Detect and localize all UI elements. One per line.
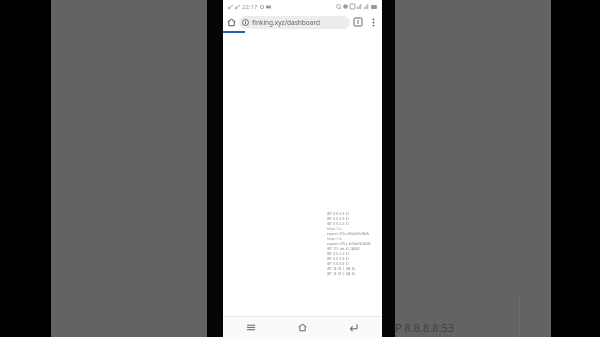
- staticText: https://s-edit.cloudflare.com: [327, 237, 372, 241]
- staticText: UDP 10.10.1.1@0.0j: [327, 267, 372, 271]
- staticText: request=c971a-3b53ebf4c30d2b: [327, 242, 372, 246]
- staticText: UDP 8.8.8.8:53: [327, 217, 372, 221]
- button[interactable]: Home: [292, 317, 312, 337]
- staticText: UDP 8.8.4.4:53: [327, 222, 372, 226]
- staticText: https://s-edit.cloudflare.com: [327, 227, 372, 231]
- staticText: 22:17: [242, 3, 258, 11]
- staticText: request=1f1e-2542abf4c30d2b: [327, 232, 372, 236]
- button[interactable]: Switch tabs: [350, 14, 366, 30]
- button[interactable]: Recent apps: [241, 317, 261, 337]
- staticText: UDP 8.8.8.8:53: [327, 262, 372, 266]
- button[interactable]: Home: [223, 14, 239, 30]
- button[interactable]: Back: [343, 317, 363, 337]
- staticText: UDP 10.10.1.1@0.0j: [327, 272, 372, 276]
- button[interactable]: More options: [366, 15, 380, 29]
- staticText: UDP 172.tab.d1.1@2442: [327, 247, 372, 251]
- button[interactable]: finking.xyz/dashboard: [239, 16, 350, 29]
- staticText: UDP 8.8.8.8:53: [327, 257, 372, 261]
- staticText: P 8.8.8.8:53: [395, 320, 455, 335]
- staticText: finking.xyz/dashboard: [252, 18, 320, 27]
- staticText: UDP 8.8.4.4:53: [327, 252, 372, 256]
- button[interactable]: UDP 8.8.8.8:53: [325, 210, 374, 308]
- staticText: UDP 8.8.8.8:53: [327, 212, 372, 216]
